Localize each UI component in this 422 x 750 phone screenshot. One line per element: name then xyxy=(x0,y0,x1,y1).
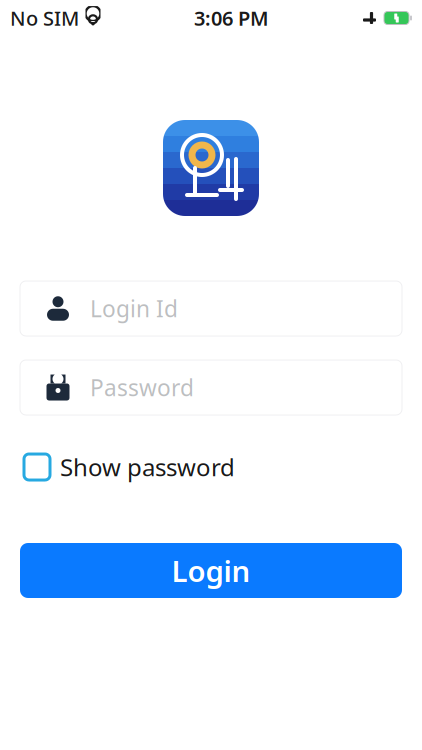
staticText: Login Id xyxy=(90,293,178,323)
staticText: Show password xyxy=(60,451,235,483)
button[interactable]: Login xyxy=(20,543,402,598)
button[interactable]: Show password xyxy=(20,450,402,484)
staticText: 3:06 PM xyxy=(194,5,269,31)
staticText: Login xyxy=(171,551,250,590)
staticText: Password xyxy=(90,372,194,402)
staticText: No SIM xyxy=(10,5,79,31)
